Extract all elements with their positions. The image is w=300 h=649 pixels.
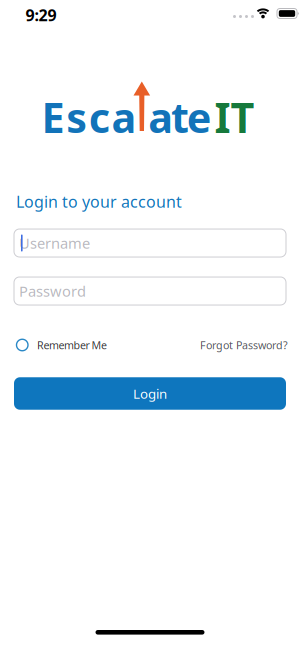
staticText: Login to your account xyxy=(16,191,182,212)
staticText: Password xyxy=(19,281,86,301)
button[interactable]: Username xyxy=(14,229,286,257)
staticText: Remember Me xyxy=(37,338,107,352)
staticText: Forgot Password? xyxy=(200,338,288,352)
staticText: Username xyxy=(19,233,90,253)
staticText: ate xyxy=(148,90,212,144)
staticText: Esca xyxy=(42,90,136,144)
button[interactable]: Remember Me xyxy=(16,338,107,352)
button[interactable]: Password xyxy=(14,277,286,305)
button[interactable]: Login xyxy=(14,377,286,410)
staticText: Login xyxy=(133,385,167,402)
button[interactable]: Forgot Password? xyxy=(200,338,288,352)
staticText: IT xyxy=(214,90,254,144)
staticText: 9:29 xyxy=(25,4,56,26)
